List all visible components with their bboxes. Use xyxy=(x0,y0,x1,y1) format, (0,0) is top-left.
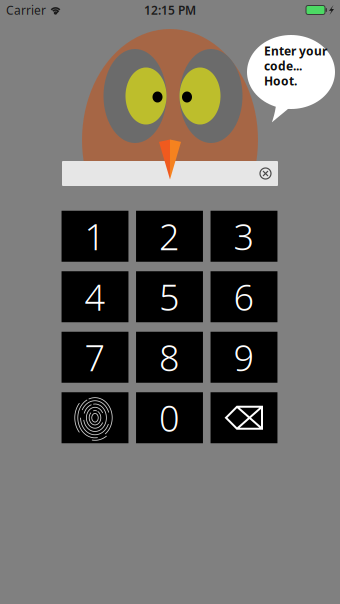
staticText: 3 xyxy=(233,212,254,260)
staticText: 8 xyxy=(159,333,180,381)
button[interactable]: 1 xyxy=(61,211,128,262)
button[interactable]: 3 xyxy=(211,211,277,262)
button[interactable]: 8 xyxy=(136,332,203,383)
staticText: 7 xyxy=(84,333,105,381)
staticText: 6 xyxy=(233,273,254,321)
staticText: 0 xyxy=(159,394,180,442)
button[interactable]: 6 xyxy=(211,271,277,322)
staticText: 1 xyxy=(84,212,105,260)
staticText: Enter your xyxy=(264,43,327,59)
button[interactable]: Touch ID xyxy=(61,392,128,443)
staticText: 2 xyxy=(159,212,180,260)
button[interactable]: 0 xyxy=(136,392,203,443)
button[interactable]: 9 xyxy=(211,332,277,383)
staticText: 12:15 PM xyxy=(144,2,196,18)
staticText: Hoot. xyxy=(264,73,297,89)
staticText: Carrier xyxy=(6,2,46,18)
button[interactable]: Delete xyxy=(211,392,277,443)
button[interactable]: 5 xyxy=(136,271,203,322)
button[interactable]: 4 xyxy=(61,271,128,322)
button[interactable]: 7 xyxy=(61,332,128,383)
staticText: 5 xyxy=(159,273,180,321)
button[interactable]: 2 xyxy=(136,211,203,262)
button[interactable]: Clear xyxy=(253,161,278,186)
staticText: 9 xyxy=(233,333,254,381)
staticText: 4 xyxy=(84,273,105,321)
staticText: code... xyxy=(264,58,302,74)
